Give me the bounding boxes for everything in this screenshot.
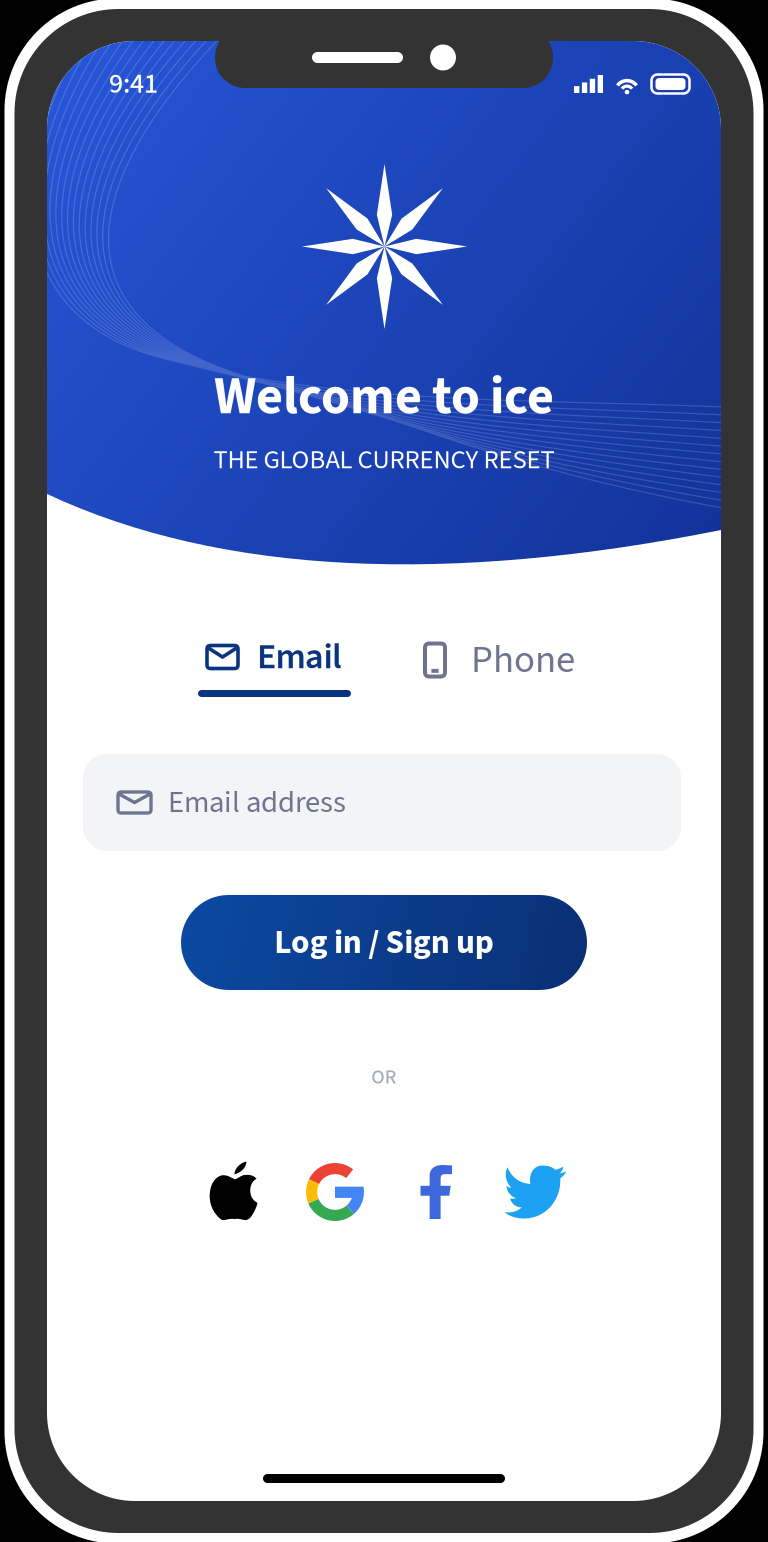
staticText: Email — [257, 631, 342, 683]
button[interactable]: Continue with Facebook — [387, 1161, 486, 1223]
button[interactable]: Email address — [83, 754, 681, 851]
button[interactable]: Continue with Google — [283, 1161, 387, 1223]
staticText: 9:41 — [109, 64, 158, 104]
button[interactable]: Phone — [425, 641, 575, 679]
button[interactable]: Email — [198, 641, 351, 697]
button[interactable]: Continue with Apple — [184, 1161, 283, 1223]
staticText: Log in / Sign up — [274, 919, 494, 966]
staticText: Phone — [471, 632, 575, 688]
staticText: OR — [371, 1063, 397, 1091]
staticText: Email address — [168, 781, 346, 824]
staticText: THE GLOBAL CURRENCY RESET — [213, 441, 554, 479]
staticText: Welcome to ice — [214, 360, 554, 434]
button[interactable]: Log in / Sign up — [181, 895, 587, 990]
button[interactable]: Continue with Twitter — [486, 1161, 585, 1223]
